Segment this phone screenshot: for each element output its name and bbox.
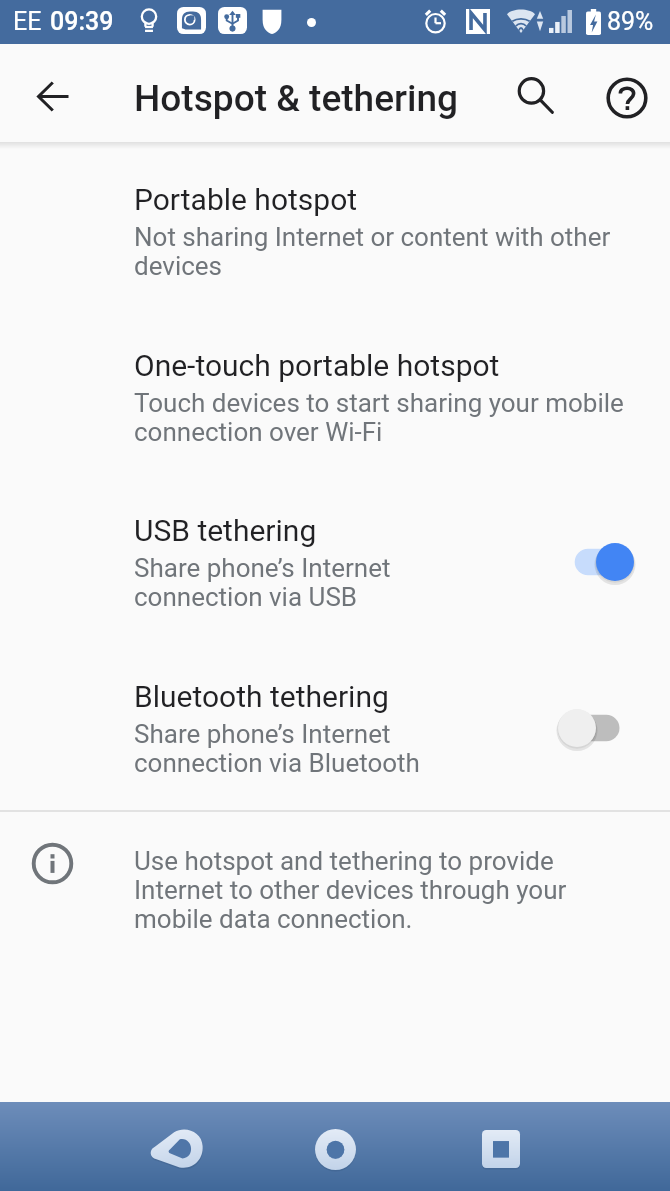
button[interactable]: On (550, 527, 650, 597)
button[interactable]: Off (550, 693, 650, 763)
staticText: One-touch portable hotspot (134, 348, 500, 383)
button[interactable]: USB tethering (0, 486, 670, 626)
staticText: Bluetooth tethering (134, 679, 389, 714)
button[interactable]: One-touch portable hotspot (0, 321, 670, 461)
staticText: Touch devices to start sharing your mobi… (134, 388, 646, 447)
button[interactable]: Home (291, 1105, 379, 1191)
button[interactable]: Portable hotspot (0, 155, 670, 295)
staticText: 89% (607, 7, 654, 36)
staticText: Hotspot & tethering (134, 77, 459, 120)
staticText: Use hotspot and tethering to provide Int… (134, 846, 604, 934)
staticText: Not sharing Internet or content with oth… (134, 222, 646, 281)
staticText: 09:39 (50, 7, 114, 36)
staticText: EE (13, 7, 42, 36)
button[interactable]: Navigate up (9, 53, 96, 140)
button[interactable]: Recent apps (457, 1105, 545, 1191)
staticText: Portable hotspot (134, 182, 358, 217)
button[interactable]: Search (495, 55, 577, 137)
button[interactable]: Back (131, 1105, 219, 1191)
button[interactable]: Help (584, 55, 670, 141)
staticText: Share phone’s Internet connection via Bl… (134, 719, 524, 778)
staticText: Share phone’s Internet connection via US… (134, 553, 524, 612)
staticText: USB tethering (134, 513, 317, 548)
button[interactable]: Bluetooth tethering (0, 652, 670, 792)
